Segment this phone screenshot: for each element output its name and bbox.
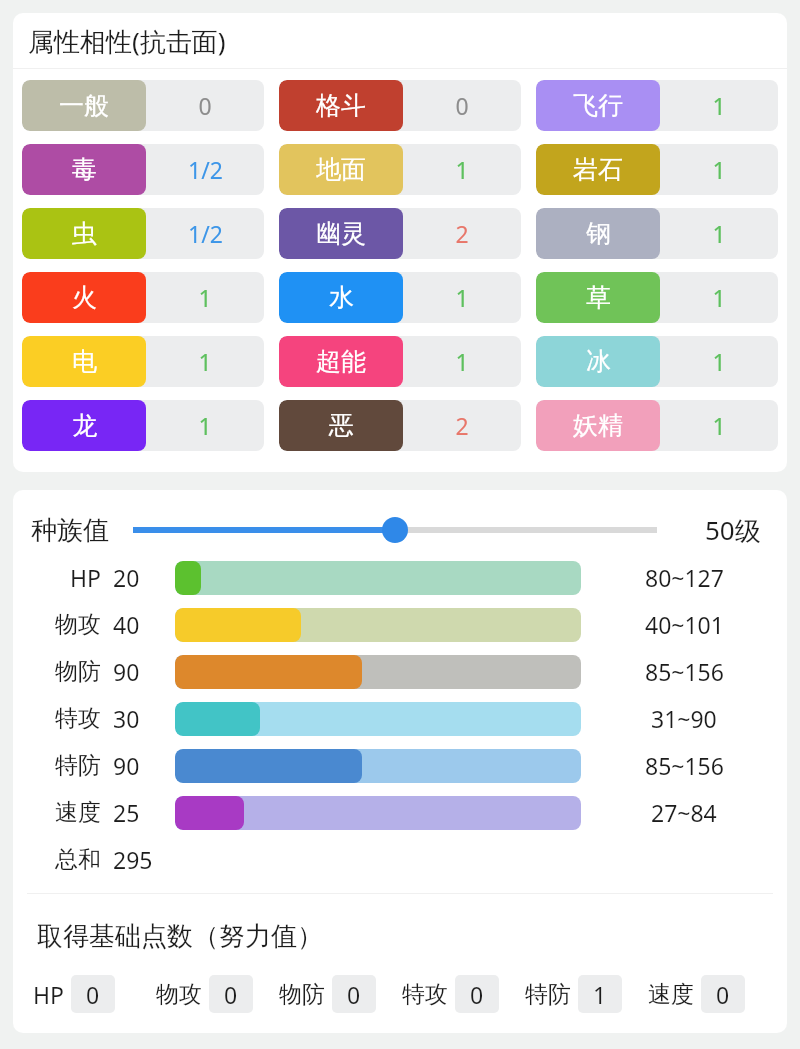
- staticText: 25: [113, 797, 140, 828]
- button[interactable]: 一般: [22, 80, 264, 131]
- staticText: 种族值: [31, 514, 109, 547]
- button[interactable]: 火: [22, 272, 264, 323]
- staticText: 1: [712, 346, 726, 377]
- staticText: 速度: [55, 798, 101, 827]
- button[interactable]: 虫: [22, 208, 264, 259]
- staticText: 27~84: [651, 797, 717, 828]
- staticText: 50级: [705, 512, 761, 548]
- staticText: 特防: [55, 751, 101, 780]
- staticText: 85~156: [645, 750, 724, 781]
- button[interactable]: 电: [22, 336, 264, 387]
- staticText: 取得基础点数（努力值）: [37, 920, 323, 953]
- staticText: 85~156: [645, 656, 724, 687]
- staticText: 岩石: [573, 154, 623, 185]
- staticText: 40~101: [645, 609, 724, 640]
- staticText: 1/2: [188, 154, 223, 185]
- staticText: 0: [470, 979, 484, 1010]
- staticText: 0: [86, 979, 100, 1010]
- staticText: 特攻: [55, 704, 101, 733]
- staticText: 虫: [72, 218, 97, 249]
- staticText: 2: [455, 218, 469, 249]
- staticText: 40: [113, 609, 140, 640]
- staticText: 2: [455, 410, 469, 441]
- staticText: HP: [70, 562, 101, 593]
- staticText: 0: [716, 979, 730, 1010]
- staticText: 1: [712, 410, 726, 441]
- button[interactable]: 冰: [536, 336, 778, 387]
- staticText: 幽灵: [316, 218, 366, 249]
- staticText: 1: [455, 282, 469, 313]
- button[interactable]: 特防: [525, 975, 644, 1013]
- staticText: 1: [198, 346, 212, 377]
- button[interactable]: 速度: [648, 975, 767, 1013]
- staticText: 火: [72, 282, 97, 313]
- staticText: 90: [113, 750, 140, 781]
- staticText: 1: [712, 218, 726, 249]
- staticText: 冰: [586, 346, 611, 377]
- staticText: 1: [712, 282, 726, 313]
- button[interactable]: 特攻: [402, 975, 521, 1013]
- staticText: 1: [593, 979, 607, 1010]
- staticText: 30: [113, 703, 140, 734]
- staticText: 20: [113, 562, 140, 593]
- button[interactable]: 超能: [279, 336, 521, 387]
- staticText: 0: [224, 979, 238, 1010]
- staticText: 钢: [586, 218, 611, 249]
- staticText: 地面: [316, 154, 366, 185]
- button[interactable]: 毒: [22, 144, 264, 195]
- button[interactable]: 格斗: [279, 80, 521, 131]
- button[interactable]: 幽灵: [279, 208, 521, 259]
- staticText: 1: [455, 346, 469, 377]
- button[interactable]: HP: [33, 975, 152, 1013]
- staticText: 1: [198, 282, 212, 313]
- staticText: 90: [113, 656, 140, 687]
- staticText: 格斗: [316, 90, 366, 121]
- staticText: 属性相性(抗击面): [28, 23, 226, 59]
- staticText: 草: [586, 282, 611, 313]
- staticText: 1/2: [188, 218, 223, 249]
- button[interactable]: 岩石: [536, 144, 778, 195]
- button[interactable]: 草: [536, 272, 778, 323]
- staticText: 物攻: [55, 610, 101, 639]
- button[interactable]: 地面: [279, 144, 521, 195]
- staticText: 特攻: [402, 980, 448, 1009]
- button[interactable]: 水: [279, 272, 521, 323]
- button[interactable]: Level slider: [133, 515, 657, 545]
- staticText: 总和: [55, 845, 101, 874]
- staticText: 物防: [279, 980, 325, 1009]
- button[interactable]: 钢: [536, 208, 778, 259]
- staticText: 电: [72, 346, 97, 377]
- staticText: 一般: [59, 90, 109, 121]
- staticText: 1: [712, 154, 726, 185]
- staticText: 1: [455, 154, 469, 185]
- staticText: 0: [347, 979, 361, 1010]
- staticText: 1: [198, 410, 212, 441]
- staticText: 速度: [648, 980, 694, 1009]
- staticText: 飞行: [573, 90, 623, 121]
- staticText: 妖精: [573, 410, 623, 441]
- staticText: 超能: [316, 346, 366, 377]
- staticText: 31~90: [651, 703, 717, 734]
- staticText: 水: [329, 282, 354, 313]
- staticText: 恶: [329, 410, 354, 441]
- staticText: HP: [33, 979, 64, 1010]
- staticText: 物防: [55, 657, 101, 686]
- button[interactable]: 妖精: [536, 400, 778, 451]
- button[interactable]: 恶: [279, 400, 521, 451]
- staticText: 0: [455, 90, 469, 121]
- button[interactable]: 物攻: [156, 975, 275, 1013]
- staticText: 80~127: [645, 562, 724, 593]
- staticText: 龙: [72, 410, 97, 441]
- staticText: 毒: [72, 154, 97, 185]
- button[interactable]: 飞行: [536, 80, 778, 131]
- staticText: 特防: [525, 980, 571, 1009]
- staticText: 物攻: [156, 980, 202, 1009]
- button[interactable]: 物防: [279, 975, 398, 1013]
- staticText: 1: [712, 90, 726, 121]
- button[interactable]: 龙: [22, 400, 264, 451]
- staticText: 295: [113, 844, 153, 875]
- staticText: 0: [198, 90, 212, 121]
